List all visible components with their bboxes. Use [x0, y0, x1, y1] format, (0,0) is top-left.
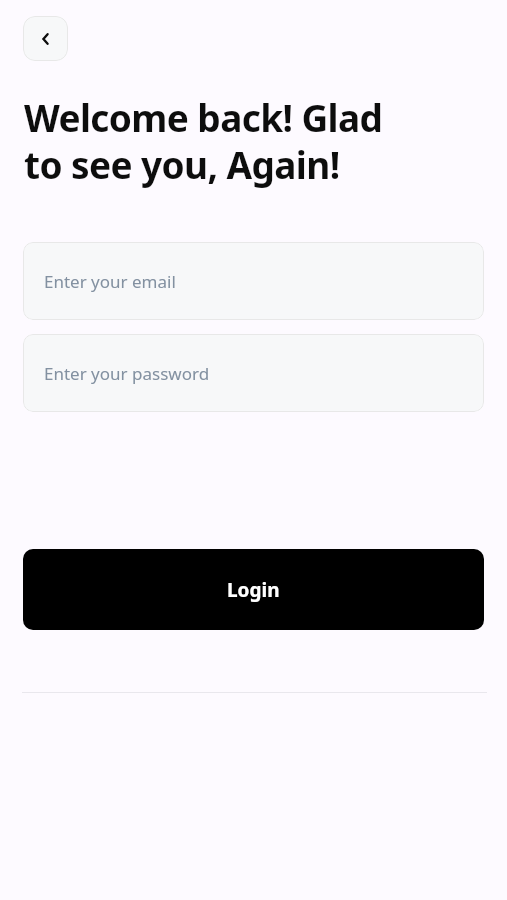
button[interactable]: Back [23, 16, 68, 61]
button[interactable]: Enter your email [23, 242, 484, 320]
button[interactable]: Login [23, 549, 484, 630]
staticText: Welcome back! Glad to see you, Again! [24, 95, 383, 189]
staticText: Login [227, 577, 280, 603]
button[interactable]: Enter your password [23, 334, 484, 412]
staticText: Enter your password [44, 362, 210, 385]
staticText: Enter your email [44, 270, 176, 293]
